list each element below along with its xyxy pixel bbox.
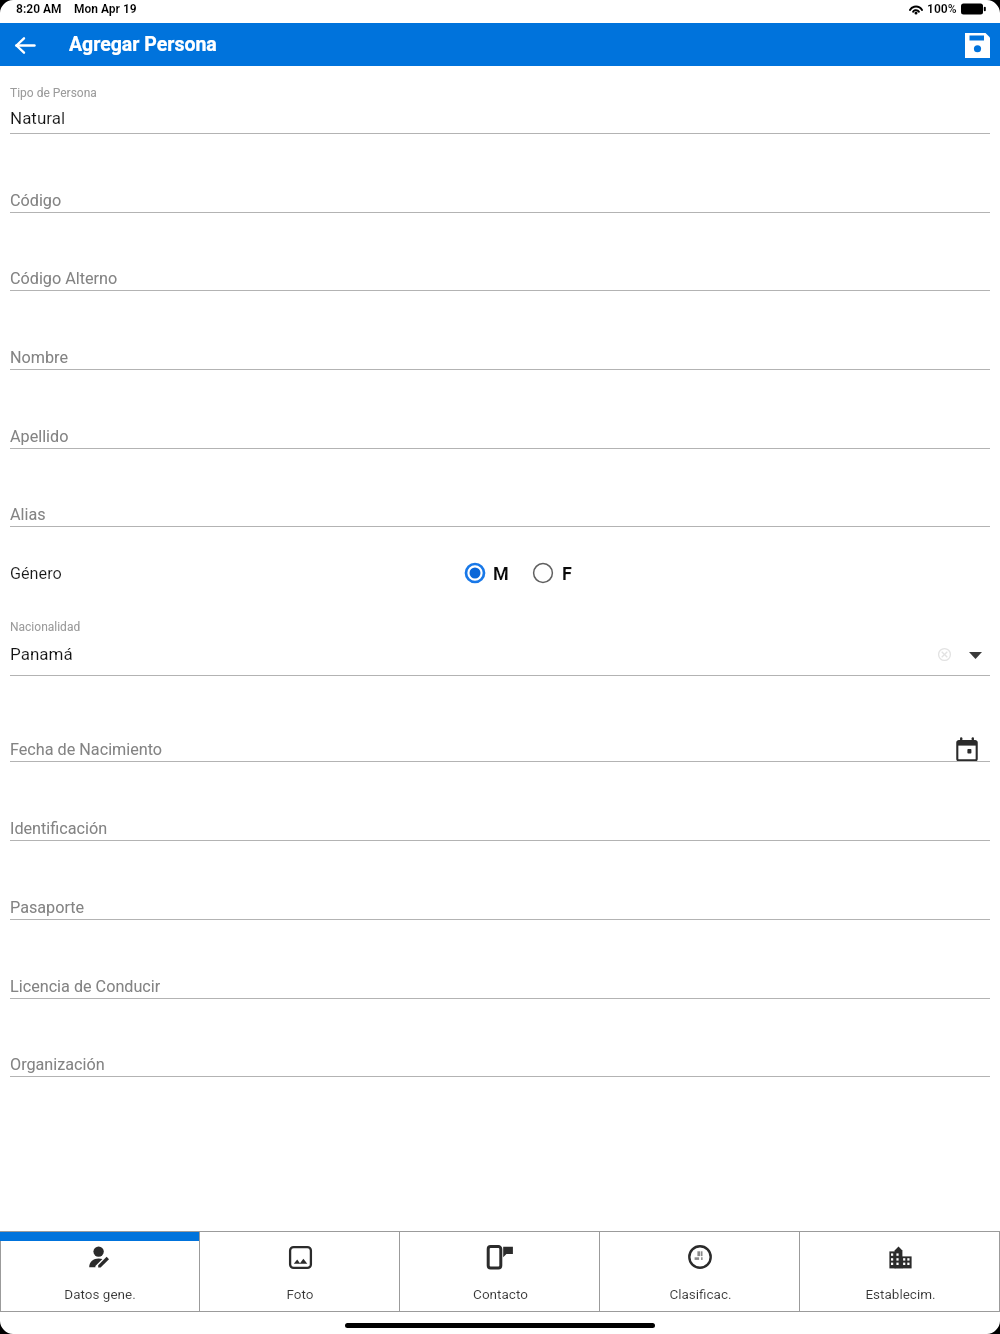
staticText: Mon Apr 19 <box>74 2 137 16</box>
button[interactable]: Contacto <box>400 1231 600 1312</box>
button[interactable]: Tipo de Persona <box>0 78 1000 133</box>
staticText: Pasaporte <box>10 898 85 917</box>
button[interactable]: Pick date <box>957 738 977 761</box>
button[interactable]: Clasificac. <box>600 1231 800 1312</box>
button[interactable]: Datos gene. <box>0 1231 200 1312</box>
staticText: Tipo de Persona <box>10 86 97 100</box>
staticText: Código <box>10 191 62 210</box>
staticText: Panamá <box>10 644 73 664</box>
button[interactable]: Código <box>0 156 1000 213</box>
staticText: 100% <box>927 2 957 16</box>
button[interactable]: Fecha de Nacimiento <box>0 705 1000 762</box>
staticText: Género <box>10 564 62 583</box>
staticText: Apellido <box>10 427 69 446</box>
button[interactable]: Establecim. <box>800 1231 1000 1312</box>
staticText: Nacionalidad <box>10 620 81 634</box>
staticText: Establecim. <box>865 1286 936 1302</box>
staticText: Organización <box>10 1055 105 1074</box>
staticText: Foto <box>286 1286 314 1302</box>
button[interactable]: Foto <box>200 1231 400 1312</box>
button[interactable]: Save <box>959 27 995 63</box>
button[interactable]: M <box>463 556 509 590</box>
staticText: Alias <box>10 505 46 524</box>
button[interactable]: Alias <box>0 470 1000 527</box>
staticText: M <box>493 563 509 584</box>
staticText: Agregar Persona <box>69 33 217 56</box>
staticText: Datos gene. <box>64 1286 136 1302</box>
staticText: Código Alterno <box>10 269 118 288</box>
staticText: Fecha de Nacimiento <box>10 740 163 759</box>
button[interactable]: Identificación <box>0 784 1000 841</box>
button[interactable]: Nombre <box>0 313 1000 370</box>
button[interactable]: Organización <box>0 1020 1000 1077</box>
button[interactable]: Clear <box>932 642 956 666</box>
staticText: Licencia de Conducir <box>10 977 161 996</box>
button[interactable]: Pasaporte <box>0 863 1000 920</box>
staticText: Natural <box>10 108 66 128</box>
staticText: Identificación <box>10 819 108 838</box>
staticText: F <box>562 563 572 584</box>
button[interactable]: Back <box>8 28 42 62</box>
button[interactable]: Licencia de Conducir <box>0 942 1000 999</box>
staticText: 8:20 AM <box>16 2 62 16</box>
button[interactable]: F <box>531 556 572 590</box>
staticText: Clasificac. <box>669 1286 732 1302</box>
staticText: Nombre <box>10 348 68 367</box>
button[interactable]: Nacionalidad <box>0 618 1000 675</box>
button[interactable]: Open list <box>964 644 986 666</box>
staticText: Contacto <box>473 1286 528 1302</box>
button[interactable]: Código Alterno <box>0 234 1000 291</box>
button[interactable]: Apellido <box>0 392 1000 449</box>
